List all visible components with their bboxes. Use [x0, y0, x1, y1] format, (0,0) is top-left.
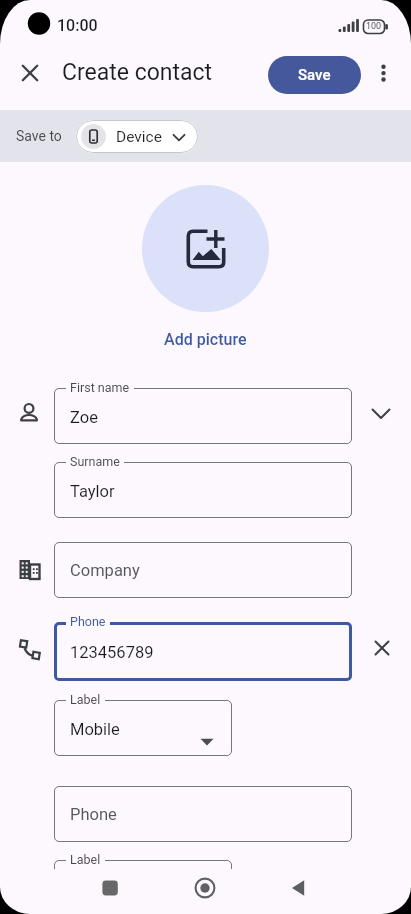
- staticText: First name: [70, 380, 130, 395]
- staticText: 123456789: [70, 643, 154, 662]
- staticText: Save: [298, 66, 331, 84]
- staticText: Save to: [16, 128, 62, 144]
- button[interactable]: [142, 185, 269, 312]
- staticText: Company: [70, 561, 140, 580]
- button[interactable]: [276, 866, 320, 910]
- button[interactable]: [370, 62, 394, 86]
- button[interactable]: [54, 860, 232, 914]
- staticText: 10:00: [57, 16, 98, 35]
- button[interactable]: [88, 866, 132, 910]
- staticText: Phone: [70, 614, 106, 629]
- staticText: Label: [70, 852, 101, 867]
- staticText: Zoe: [70, 408, 98, 427]
- button[interactable]: [54, 388, 352, 444]
- staticText: Device: [116, 128, 162, 146]
- staticText: Taylor: [70, 482, 115, 501]
- button[interactable]: [183, 866, 227, 910]
- staticText: Create contact: [62, 59, 213, 86]
- button[interactable]: [54, 622, 352, 681]
- staticText: Add picture: [164, 330, 247, 349]
- button[interactable]: [54, 542, 352, 598]
- button[interactable]: [17, 60, 43, 86]
- button[interactable]: [54, 786, 352, 842]
- button[interactable]: [54, 700, 232, 756]
- staticText: 100: [366, 21, 382, 32]
- button[interactable]: Add picture: [0, 328, 411, 350]
- staticText: Label: [70, 692, 101, 707]
- button[interactable]: [54, 462, 352, 518]
- button[interactable]: [371, 637, 393, 659]
- staticText: Mobile: [70, 720, 120, 739]
- staticText: Surname: [70, 454, 120, 469]
- button[interactable]: [367, 400, 395, 428]
- button[interactable]: Device: [76, 120, 198, 153]
- staticText: Phone: [70, 805, 117, 824]
- button[interactable]: Save: [268, 56, 361, 94]
